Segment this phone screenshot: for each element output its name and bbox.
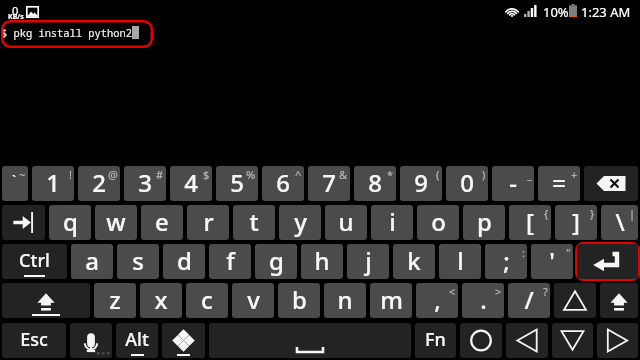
button[interactable]: c — [186, 283, 228, 318]
staticText: + — [571, 167, 578, 182]
button[interactable]: 7 — [308, 166, 350, 201]
button[interactable]: Home — [460, 323, 502, 358]
button[interactable]: ' — [531, 244, 573, 279]
button[interactable]: e — [141, 205, 183, 240]
staticText: . — [480, 283, 487, 316]
button[interactable]: Voice input — [70, 323, 112, 358]
button[interactable]: Space — [209, 323, 411, 358]
button[interactable]: Arrow up — [554, 283, 596, 318]
staticText: a — [85, 244, 99, 277]
button[interactable]: b — [278, 283, 320, 318]
staticText: ; — [503, 244, 510, 277]
staticText: 1 — [46, 166, 60, 199]
staticText: ( — [436, 167, 440, 182]
staticText: m — [380, 283, 403, 316]
button[interactable]: Esc — [2, 323, 66, 358]
button[interactable]: Arrow left — [506, 323, 548, 358]
staticText: k — [407, 244, 421, 277]
staticText: Fn — [425, 327, 446, 352]
button[interactable]: h — [301, 244, 343, 279]
button[interactable]: k — [393, 244, 435, 279]
staticText: , — [434, 283, 441, 316]
staticText: Ctrl — [19, 248, 50, 273]
staticText: - — [509, 166, 517, 199]
button[interactable]: l — [439, 244, 481, 279]
button[interactable]: r — [187, 205, 229, 240]
button[interactable]: 6 — [262, 166, 304, 201]
staticText: ^ — [295, 167, 302, 182]
button[interactable]: u — [325, 205, 367, 240]
button[interactable]: i — [371, 205, 413, 240]
staticText: 0 — [460, 166, 474, 199]
button[interactable]: = — [538, 166, 580, 201]
button[interactable]: 4 — [170, 166, 212, 201]
button[interactable]: 0 — [446, 166, 488, 201]
button[interactable]: 1 — [32, 166, 74, 201]
staticText: { — [544, 206, 549, 221]
button[interactable]: ; — [485, 244, 527, 279]
staticText: # — [156, 167, 164, 182]
button[interactable]: p — [463, 205, 505, 240]
button[interactable]: [ — [509, 205, 551, 240]
button[interactable]: Arrow down — [552, 323, 593, 358]
button[interactable]: Shift — [2, 283, 90, 318]
staticText: 9 — [414, 166, 428, 199]
button[interactable]: 8 — [354, 166, 396, 201]
button[interactable]: d — [163, 244, 205, 279]
staticText: 6 — [276, 166, 290, 199]
button[interactable]: t — [233, 205, 275, 240]
button[interactable]: Tab — [2, 205, 45, 240]
button[interactable]: j — [347, 244, 389, 279]
button[interactable]: , — [416, 283, 458, 318]
button[interactable]: ] — [555, 205, 597, 240]
button[interactable]: . — [462, 283, 504, 318]
staticText: t — [249, 205, 259, 238]
staticText: i — [389, 205, 396, 238]
button[interactable]: Arrow right — [597, 323, 638, 358]
button[interactable]: 5 — [216, 166, 258, 201]
button[interactable]: x — [140, 283, 182, 318]
button[interactable]: Shift — [600, 283, 638, 318]
staticText: = — [552, 166, 566, 199]
button[interactable]: f — [209, 244, 251, 279]
button[interactable]: 9 — [400, 166, 442, 201]
staticText: ! — [69, 167, 72, 182]
button[interactable]: \ — [601, 205, 638, 240]
button[interactable]: - — [492, 166, 534, 201]
button[interactable]: Change keyboard — [162, 323, 205, 358]
button[interactable]: Alt — [116, 323, 158, 358]
staticText: 0 — [12, 3, 19, 18]
staticText: w — [106, 205, 126, 238]
button[interactable]: 3 — [124, 166, 166, 201]
button[interactable]: Ctrl — [2, 244, 67, 279]
staticText: _ — [527, 167, 532, 182]
staticText: 2 — [92, 166, 106, 199]
staticText: ] — [572, 205, 580, 238]
staticText: 7 — [322, 166, 336, 199]
staticText: z — [109, 283, 121, 316]
staticText: 3 — [138, 166, 152, 199]
button[interactable]: a — [71, 244, 113, 279]
button[interactable]: o — [417, 205, 459, 240]
button[interactable]: Enter — [577, 244, 638, 279]
button[interactable]: z — [94, 283, 136, 318]
button[interactable]: Fn — [415, 323, 456, 358]
button[interactable]: w — [95, 205, 137, 240]
button[interactable]: / — [508, 283, 550, 318]
staticText: r — [203, 205, 214, 238]
staticText: * — [387, 167, 394, 182]
button[interactable]: v — [232, 283, 274, 318]
button[interactable]: ` — [2, 166, 28, 201]
staticText: 8 — [368, 166, 382, 199]
staticText: ` — [12, 171, 16, 189]
button[interactable]: m — [370, 283, 412, 318]
button[interactable]: Backspace — [584, 166, 638, 201]
button[interactable]: g — [255, 244, 297, 279]
button[interactable]: n — [324, 283, 366, 318]
button[interactable]: s — [117, 244, 159, 279]
button[interactable]: y — [279, 205, 321, 240]
button[interactable]: 2 — [78, 166, 120, 201]
staticText: ) — [482, 167, 486, 182]
staticText: g — [269, 244, 284, 277]
button[interactable]: q — [49, 205, 91, 240]
